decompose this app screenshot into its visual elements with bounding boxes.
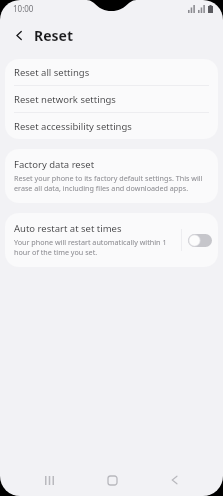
button[interactable]: Auto restart at set times (5, 213, 181, 267)
staticText: Reset accessibility settings (14, 120, 132, 133)
button[interactable]: Reset network settings (5, 86, 218, 112)
button[interactable]: Home (98, 466, 126, 494)
staticText: Factory data reset (14, 158, 95, 171)
button[interactable]: Reset all settings (5, 59, 218, 85)
staticText: Reset network settings (14, 93, 116, 106)
staticText: Reset (34, 26, 74, 45)
staticText: Reset all settings (14, 66, 90, 79)
button[interactable]: Recents (35, 466, 63, 494)
staticText: Reset your phone to its factory default … (14, 173, 209, 193)
staticText: 10:00 (13, 3, 34, 14)
button[interactable]: Auto restart toggle (182, 224, 218, 257)
staticText: Auto restart at set times (14, 222, 122, 235)
button[interactable]: Back (8, 24, 30, 46)
button[interactable]: Back (160, 466, 188, 494)
button[interactable]: Factory data reset (5, 149, 218, 203)
staticText: Your phone will restart automatically wi… (14, 237, 177, 257)
button[interactable]: Reset accessibility settings (5, 113, 218, 139)
